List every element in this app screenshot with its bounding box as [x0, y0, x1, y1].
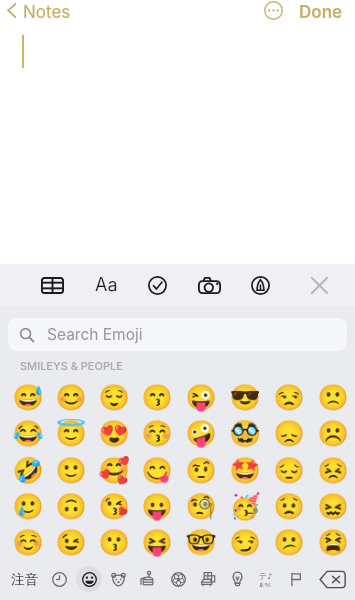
button[interactable]: Emoji	[6, 488, 49, 524]
staticText: 😟	[273, 492, 305, 521]
button[interactable]: Emoji	[135, 452, 179, 488]
staticText: SMILEYS & PEOPLE	[20, 359, 123, 372]
button[interactable]: Emoji	[49, 524, 92, 560]
button[interactable]: Table	[30, 264, 74, 306]
staticText: 😋	[141, 456, 173, 485]
button[interactable]: Emoji	[179, 415, 223, 451]
button[interactable]: Emoji	[267, 488, 311, 524]
staticText: 😇	[55, 419, 87, 448]
button[interactable]: Activity	[163, 558, 193, 600]
staticText: ☺️	[12, 528, 44, 557]
button[interactable]: Emoji	[223, 379, 267, 415]
staticText: 🙃	[55, 492, 87, 521]
button[interactable]: Emoji	[179, 488, 223, 524]
button[interactable]: Travel and places	[193, 558, 223, 600]
staticText: 😕	[273, 528, 305, 557]
staticText: Done	[299, 2, 343, 18]
staticText: 注音	[11, 571, 38, 588]
staticText: 🙁	[317, 383, 349, 412]
button[interactable]: Emoji	[179, 452, 223, 488]
staticText: 🤪	[185, 419, 217, 448]
staticText: 😎	[229, 383, 261, 412]
button[interactable]: Emoji	[223, 488, 267, 524]
staticText: 😞	[273, 419, 305, 448]
button[interactable]: Emoji	[92, 488, 135, 524]
staticText: テ♪	[259, 571, 273, 581]
staticText: 😫	[317, 528, 349, 557]
button[interactable]: Emoji	[267, 452, 311, 488]
button[interactable]: Emoji	[267, 524, 311, 560]
button[interactable]: Emoji	[223, 415, 267, 451]
button[interactable]: Objects	[222, 558, 252, 600]
button[interactable]: Emoji	[311, 415, 355, 451]
button[interactable]: Emoji	[135, 415, 179, 451]
button[interactable]: Search Emoji	[8, 318, 347, 351]
staticText: 🤨	[185, 456, 217, 485]
button[interactable]: 注音	[4, 558, 44, 600]
button[interactable]: Food and drink	[133, 558, 163, 600]
button[interactable]: Emoji	[267, 415, 311, 451]
staticText: 😍	[98, 419, 130, 448]
button[interactable]: Smileys	[74, 558, 104, 600]
button[interactable]: Markup	[238, 264, 282, 306]
staticText: 🧐	[185, 492, 217, 521]
button[interactable]: Emoji	[6, 524, 49, 560]
button[interactable]: Emoji	[92, 452, 135, 488]
button[interactable]: Emoji	[49, 488, 92, 524]
button[interactable]: Emoji	[92, 415, 135, 451]
button[interactable]: Done	[286, 0, 344, 20]
button[interactable]: Emoji	[135, 524, 179, 560]
staticText: ☹️	[317, 419, 349, 448]
button[interactable]: Emoji	[135, 488, 179, 524]
staticText: 😛	[141, 492, 173, 521]
staticText: Search Emoji	[47, 325, 143, 344]
button[interactable]: Notes	[0, 0, 79, 20]
button[interactable]: Emoji	[311, 452, 355, 488]
button[interactable]: Checklist	[135, 264, 179, 306]
button[interactable]: Delete	[310, 558, 355, 600]
staticText: 😚	[141, 419, 173, 448]
button[interactable]: Emoji	[135, 379, 179, 415]
button[interactable]: Emoji	[92, 524, 135, 560]
button[interactable]: Close	[297, 264, 341, 306]
staticText: 😉	[55, 528, 87, 557]
button[interactable]: Emoji	[267, 379, 311, 415]
staticText: 🤩	[229, 456, 261, 485]
button[interactable]: More options	[260, 0, 286, 20]
staticText: 😘	[98, 492, 130, 521]
button[interactable]: Camera	[187, 264, 231, 306]
staticText: 🥲	[12, 492, 44, 521]
button[interactable]: Emoji	[223, 452, 267, 488]
button[interactable]: Animals and nature	[103, 558, 133, 600]
button[interactable]: Emoji	[6, 379, 49, 415]
button[interactable]: Emoji	[92, 379, 135, 415]
staticText: Aa	[95, 274, 118, 296]
button[interactable]: Text format	[84, 264, 128, 306]
staticText: 😌	[98, 383, 130, 412]
staticText: 😣	[317, 456, 349, 485]
button[interactable]: Emoji	[179, 524, 223, 560]
button[interactable]: Emoji	[311, 488, 355, 524]
button[interactable]: Emoji	[6, 452, 49, 488]
staticText: 🥳	[229, 492, 261, 521]
button[interactable]: Symbols	[251, 558, 281, 600]
button[interactable]: Emoji	[223, 524, 267, 560]
button[interactable]: Emoji	[49, 415, 92, 451]
staticText: 🥸	[229, 419, 261, 448]
staticText: 😗	[98, 528, 130, 557]
button[interactable]: Emoji	[49, 452, 92, 488]
staticText: 🙂	[55, 456, 87, 485]
button[interactable]: Emoji	[179, 379, 223, 415]
staticText: 😖	[317, 492, 349, 521]
button[interactable]: Emoji	[6, 415, 49, 451]
button[interactable]: Flags	[280, 558, 310, 600]
staticText: 🤣	[12, 456, 44, 485]
button[interactable]: Emoji	[311, 524, 355, 560]
button[interactable]: Emoji	[49, 379, 92, 415]
staticText: 😙	[141, 383, 173, 412]
button[interactable]: Emoji	[311, 379, 355, 415]
staticText: 😏	[229, 528, 261, 557]
button[interactable]: Recent	[44, 558, 74, 600]
staticText: 😝	[141, 528, 173, 557]
staticText: 😒	[273, 383, 305, 412]
